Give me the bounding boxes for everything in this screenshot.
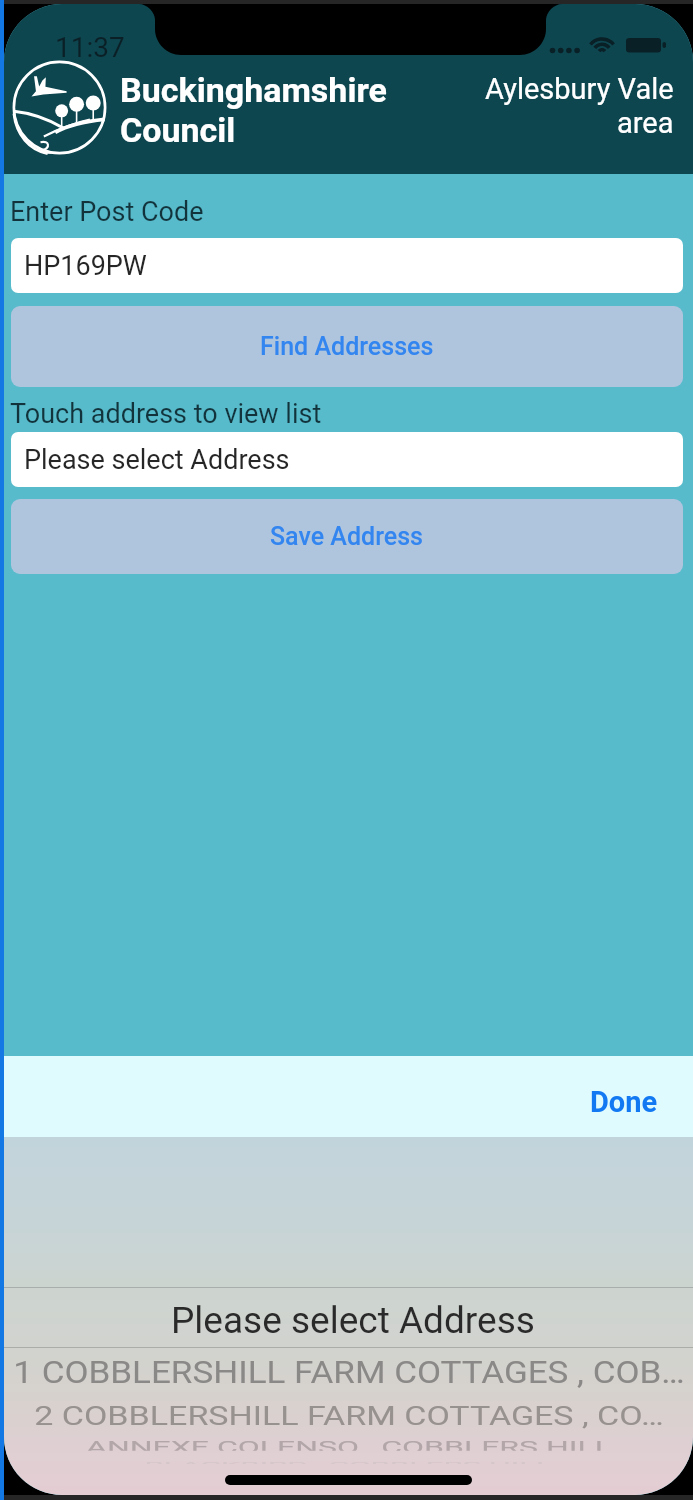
other: Buckinghamshire Council [12,60,107,155]
button[interactable]: 2 COBBLERSHILL FARM COTTAGES , CO… [4,1394,693,1437]
button[interactable]: BLACKBIRD , COBBLERS HILL [4,1454,693,1470]
staticText: BLACKBIRD , COBBLERS HILL [144,1460,553,1464]
button[interactable]: Please select Address [4,1287,693,1347]
staticText: Please select Address [171,1299,535,1342]
staticText: HP169PW [24,250,147,282]
staticText: Please select Address [24,444,290,476]
staticText: ANNEXE COLENSO , COBBLERS HILL [86,1437,612,1451]
staticText: Council [120,110,236,150]
button[interactable]: ANNEXE COLENSO , COBBLERS HILL [4,1431,693,1457]
button[interactable]: 1 COBBLERSHILL FARM COTTAGES , COB… [4,1349,693,1396]
staticText: 1 COBBLERSHILL FARM COTTAGES , COB… [13,1354,685,1391]
staticText: area [617,106,674,140]
staticText: Enter Post Code [10,196,204,228]
staticText: Save Address [270,522,424,551]
staticText: Buckinghamshire [120,70,387,110]
staticText: Aylesbury Vale [485,72,674,106]
button[interactable]: HP169PW [11,238,683,293]
button[interactable]: Find Addresses [11,306,683,387]
staticText: Find Addresses [260,332,434,361]
staticText: Touch address to view list [10,398,322,430]
button[interactable]: Done [565,1071,693,1133]
staticText: 2 COBBLERSHILL FARM COTTAGES , CO… [34,1401,664,1431]
other: Status: signal, wi-fi, battery [547,33,671,57]
button[interactable]: Save Address [11,499,683,574]
staticText: Done [590,1085,658,1119]
button[interactable]: Please select Address [11,432,683,487]
staticText: 11:37 [55,31,125,64]
